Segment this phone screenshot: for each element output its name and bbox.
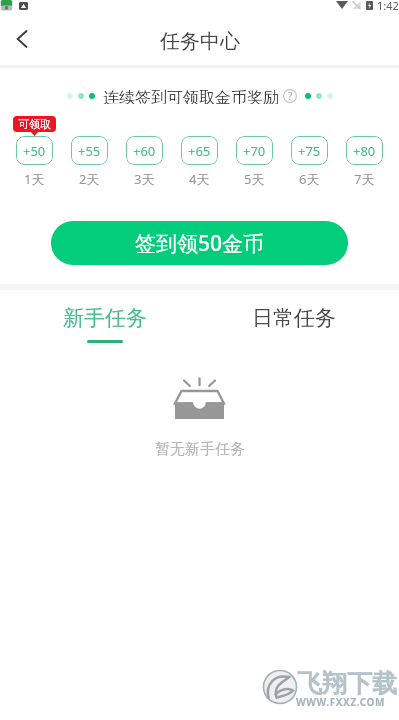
staticText: ?: [288, 89, 293, 103]
staticText: 可领取: [18, 117, 51, 131]
staticText: +65: [188, 142, 211, 160]
staticText: 暂无新手任务: [155, 440, 245, 459]
staticText: 签到领50金币: [135, 229, 265, 258]
staticText: +80: [353, 142, 376, 160]
button[interactable]: Back: [0, 22, 44, 66]
button[interactable]: +55: [71, 136, 108, 165]
staticText: +50: [23, 142, 46, 160]
staticText: 连续签到可领取金币奖励: [103, 88, 279, 104]
button[interactable]: Help: [283, 89, 297, 103]
staticText: +55: [78, 142, 101, 160]
staticText: 3天: [134, 170, 155, 188]
staticText: WWW.FXXZ.COM: [296, 695, 386, 709]
staticText: 6天: [299, 170, 320, 188]
staticText: 1:42: [377, 0, 399, 13]
staticText: 飞翔下载: [297, 668, 397, 699]
button[interactable]: +75: [291, 136, 328, 165]
staticText: +60: [133, 142, 156, 160]
button[interactable]: +60: [126, 136, 163, 165]
button[interactable]: +65: [181, 136, 218, 165]
staticText: 7天: [354, 170, 375, 188]
staticText: 5天: [244, 170, 265, 188]
button[interactable]: 新手任务: [10, 291, 199, 343]
button[interactable]: 日常任务: [199, 291, 389, 343]
button[interactable]: +70: [236, 136, 273, 165]
staticText: 任务中心: [160, 29, 240, 54]
staticText: 4天: [189, 170, 210, 188]
button[interactable]: +50: [16, 136, 53, 165]
staticText: 2天: [79, 170, 100, 188]
staticText: 1天: [24, 170, 45, 188]
staticText: +70: [243, 142, 266, 160]
staticText: 日常任务: [252, 305, 336, 331]
staticText: 新手任务: [63, 305, 147, 331]
button[interactable]: 签到领50金币: [51, 221, 348, 265]
button[interactable]: +80: [346, 136, 383, 165]
staticText: +75: [298, 142, 321, 160]
